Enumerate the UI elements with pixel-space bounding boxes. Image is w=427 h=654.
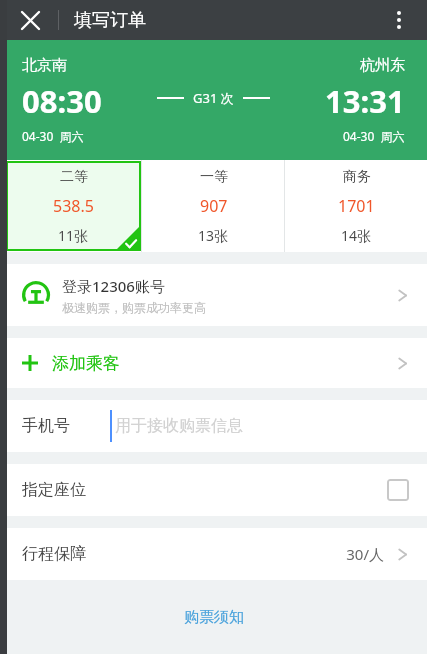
staticText: 1701 bbox=[338, 195, 375, 217]
button[interactable]: More options bbox=[379, 0, 419, 40]
staticText: 二等 bbox=[60, 168, 88, 186]
button[interactable]: 登录12306账号 bbox=[0, 264, 427, 326]
staticText: 04-30 周六 bbox=[343, 128, 405, 144]
staticText: G31 次 bbox=[193, 89, 234, 107]
staticText: 一等 bbox=[200, 168, 228, 186]
staticText: 手机号 bbox=[22, 416, 70, 436]
button[interactable]: 商务 bbox=[285, 160, 427, 252]
staticText: 添加乘客 bbox=[52, 353, 120, 374]
staticText: 极速购票，购票成功率更高 bbox=[62, 300, 206, 315]
staticText: 商务 bbox=[343, 168, 371, 186]
other: Choose seat checkbox bbox=[387, 479, 409, 501]
staticText: 13:31 bbox=[325, 80, 405, 122]
button[interactable]: 二等 bbox=[6, 161, 141, 251]
staticText: 13张 bbox=[198, 226, 229, 245]
button[interactable]: 一等 bbox=[142, 160, 284, 252]
staticText: 登录12306账号 bbox=[62, 276, 165, 296]
staticText: 行程保障 bbox=[22, 544, 86, 564]
button[interactable]: 手机号 bbox=[0, 400, 427, 452]
staticText: 907 bbox=[200, 195, 228, 217]
button[interactable]: 购票须知 bbox=[166, 602, 262, 633]
staticText: 用于接收购票信息 bbox=[115, 416, 243, 436]
staticText: 填写订单 bbox=[74, 9, 146, 32]
staticText: 08:30 bbox=[22, 80, 102, 122]
staticText: 杭州东 bbox=[360, 56, 405, 75]
staticText: 购票须知 bbox=[184, 608, 244, 627]
staticText: 北京南 bbox=[22, 56, 67, 75]
staticText: 11张 bbox=[58, 226, 89, 245]
staticText: 30/人 bbox=[346, 544, 384, 564]
staticText: 指定座位 bbox=[22, 480, 86, 500]
button[interactable]: 指定座位 bbox=[0, 464, 427, 516]
staticText: 14张 bbox=[341, 226, 372, 245]
staticText: 04-30 周六 bbox=[22, 128, 84, 144]
staticText: 538.5 bbox=[53, 195, 94, 217]
button[interactable]: Close bbox=[10, 0, 50, 40]
button[interactable]: 行程保障 bbox=[0, 528, 427, 580]
button[interactable]: 添加乘客 bbox=[0, 338, 427, 388]
